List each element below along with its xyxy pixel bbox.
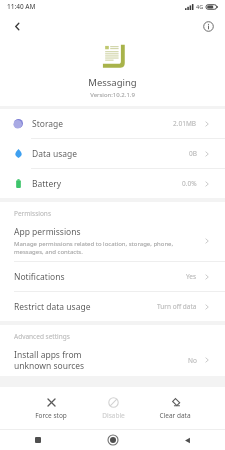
button[interactable]: Force stop xyxy=(20,393,82,424)
staticText: Data usage xyxy=(32,148,78,160)
button[interactable]: Home xyxy=(75,430,150,450)
button[interactable]: App permissions xyxy=(0,221,225,261)
staticText: No xyxy=(188,356,197,365)
staticText: 11:40 AM xyxy=(7,2,36,11)
staticText: Yes xyxy=(186,272,197,281)
staticText: Advanced settings xyxy=(14,332,70,341)
button[interactable]: Data usage xyxy=(0,139,225,168)
staticText: Manage permissions related to location, … xyxy=(14,240,174,256)
staticText: Restrict data usage xyxy=(14,301,91,313)
button: Disable xyxy=(82,393,144,424)
button[interactable]: Notifications xyxy=(0,262,225,291)
staticText: Clear data xyxy=(159,411,191,420)
button[interactable]: Recents xyxy=(0,430,75,450)
staticText: Permissions xyxy=(14,209,52,218)
staticText: 4G xyxy=(196,3,204,10)
button[interactable]: Back xyxy=(150,430,225,450)
staticText: Notifications xyxy=(14,271,65,283)
staticText: 0.0% xyxy=(182,179,197,188)
staticText: Force stop xyxy=(35,411,67,420)
button[interactable]: Back xyxy=(7,16,27,36)
staticText: Install apps from unknown sources xyxy=(14,349,85,371)
staticText: Battery xyxy=(32,178,62,190)
button[interactable]: Restrict data usage xyxy=(0,292,225,321)
staticText: 2.01MB xyxy=(173,119,197,128)
staticText: App permissions xyxy=(14,226,81,238)
staticText: Storage xyxy=(32,118,64,130)
staticText: 0B xyxy=(189,149,197,158)
button[interactable]: Battery xyxy=(0,169,225,198)
staticText: Messaging xyxy=(0,76,225,89)
button[interactable]: Clear data xyxy=(144,393,206,424)
staticText: Turn off data xyxy=(157,302,197,311)
staticText: Version:10.2.1.9 xyxy=(0,91,225,99)
button[interactable]: App info xyxy=(198,16,218,36)
button[interactable]: Storage xyxy=(0,109,225,138)
staticText: Disable xyxy=(102,411,125,420)
button[interactable]: Install apps from unknown sources xyxy=(0,344,225,376)
